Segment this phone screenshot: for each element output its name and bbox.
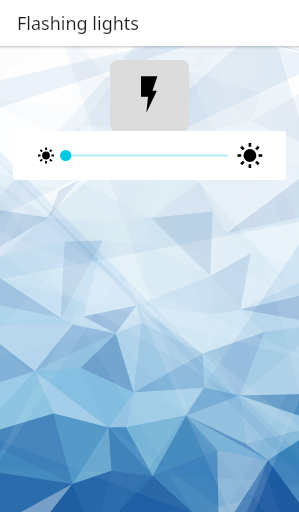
button[interactable]: Brightness — [13, 131, 286, 180]
staticText: Flashing lights — [17, 11, 139, 36]
button[interactable]: Toggle flashlight — [110, 60, 189, 132]
